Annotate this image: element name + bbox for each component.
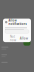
staticText: Not now: [10, 35, 16, 42]
staticText: Allow notifications: [8, 19, 26, 26]
button[interactable]: New chat: [23, 40, 30, 46]
staticText: Allow: [20, 37, 28, 40]
button[interactable]: Allow: [19, 36, 29, 41]
button[interactable]: Not now: [9, 34, 17, 43]
